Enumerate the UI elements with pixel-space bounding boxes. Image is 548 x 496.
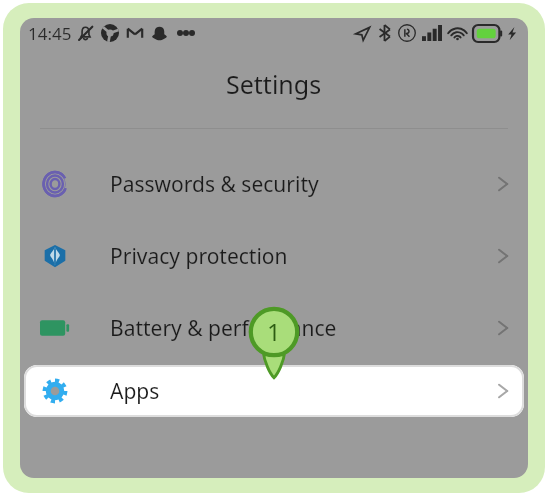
staticText: Passwords & security <box>110 170 319 199</box>
button[interactable]: Battery and performance <box>20 308 528 348</box>
button[interactable]: Apps <box>24 365 524 417</box>
staticText: 14:45 <box>28 22 72 45</box>
button[interactable]: Privacy protection <box>20 236 528 276</box>
button[interactable]: Passwords and security <box>20 164 528 204</box>
staticText: 1 <box>267 315 281 348</box>
other: Passwords and security <box>38 167 72 201</box>
staticText: Apps <box>110 377 160 406</box>
staticText: Battery & performance <box>110 314 337 343</box>
other: Privacy protection <box>38 239 72 273</box>
other: Battery and performance <box>38 311 72 345</box>
other: Apps <box>38 374 72 408</box>
staticText: Settings <box>226 67 322 101</box>
staticText: Privacy protection <box>110 242 288 271</box>
